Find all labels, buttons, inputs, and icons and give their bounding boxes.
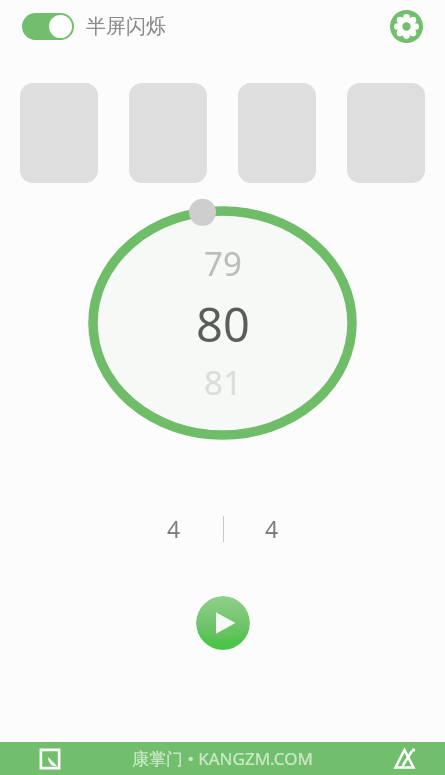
staticText: 4 [265,513,279,544]
button[interactable]: Library [38,747,62,771]
staticText: 81 [204,360,242,405]
button[interactable] [129,83,207,183]
staticText: 79 [204,241,242,286]
button[interactable]: Settings [390,10,423,43]
button[interactable] [238,83,316,183]
button[interactable] [347,83,425,183]
button[interactable]: 半屏闪烁 [22,13,166,40]
button[interactable] [20,83,98,183]
staticText: 4 [167,513,181,544]
staticText: 80 [196,292,250,356]
button[interactable]: Metronome [392,746,417,771]
staticText: 康掌门 • KANGZM.COM [132,747,313,770]
button[interactable]: Tempo dial [0,211,445,451]
button[interactable]: Play [196,596,250,650]
staticText: 半屏闪烁 [86,14,166,39]
button[interactable]: 4 [245,513,299,544]
button[interactable]: 4 [147,513,201,544]
